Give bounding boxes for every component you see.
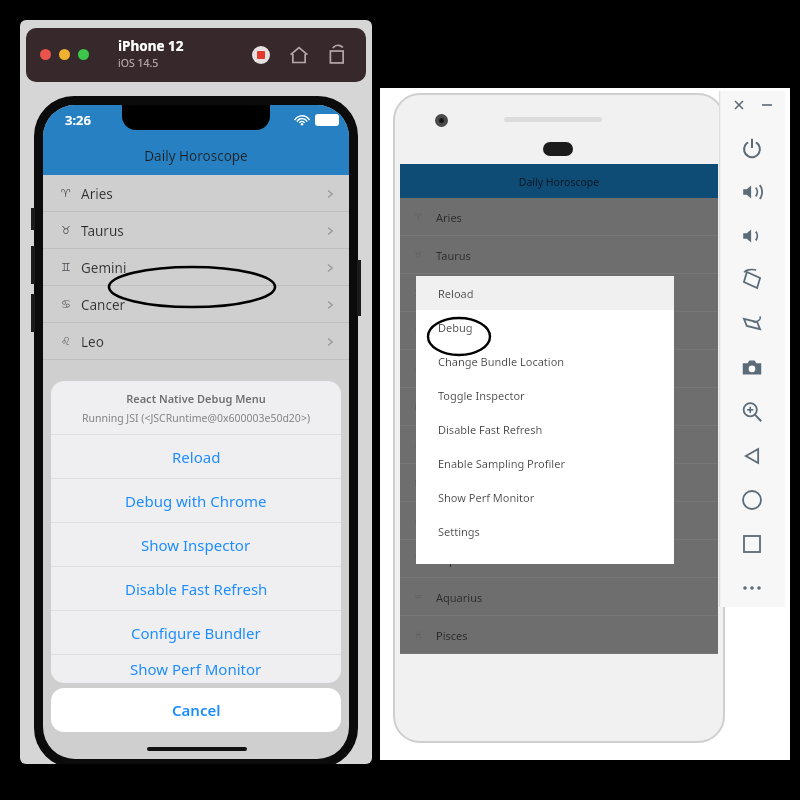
button[interactable]: ♍ xyxy=(400,388,718,426)
button[interactable]: Rotate right xyxy=(741,313,763,335)
button[interactable]: ♒ xyxy=(400,578,718,616)
button[interactable]: Disable Fast Refresh xyxy=(51,567,341,610)
button[interactable]: Reload xyxy=(416,276,674,310)
button[interactable]: Cancel xyxy=(51,688,341,732)
staticText: Leo xyxy=(436,362,455,377)
button[interactable]: More xyxy=(741,577,763,599)
button[interactable]: Rotate left xyxy=(741,269,763,291)
staticText: Reload xyxy=(438,286,474,301)
button[interactable]: ♏ xyxy=(400,464,718,502)
button[interactable]: Record xyxy=(252,46,270,64)
button[interactable]: Change Bundle Location xyxy=(416,344,674,378)
button[interactable]: ♉ xyxy=(400,236,718,274)
button[interactable]: ♋ xyxy=(400,312,718,350)
button[interactable]: Show Perf Monitor xyxy=(416,480,674,514)
staticText: Show Inspector xyxy=(141,535,251,555)
button[interactable]: Enable Sampling Profiler xyxy=(416,446,674,480)
button[interactable]: Rotate xyxy=(326,44,348,66)
button[interactable]: Home xyxy=(288,44,310,66)
staticText: ♓ xyxy=(414,630,423,640)
staticText: Capricorn xyxy=(436,552,487,567)
button[interactable]: ♌ xyxy=(43,323,349,360)
staticText: Daily Horoscope xyxy=(43,147,349,165)
staticText: ♐ xyxy=(414,516,423,526)
staticText: Reload xyxy=(172,447,221,467)
staticText: ♒ xyxy=(414,592,423,602)
button[interactable]: Zoom xyxy=(741,401,763,423)
staticText: ♊ xyxy=(414,288,423,298)
staticText: Disable Fast Refresh xyxy=(438,422,543,437)
button[interactable]: ♈ xyxy=(400,198,718,236)
button[interactable]: ♑ xyxy=(400,540,718,578)
button[interactable]: ♊ xyxy=(43,249,349,286)
button[interactable]: Toggle Inspector xyxy=(416,378,674,412)
button[interactable]: Minimize xyxy=(759,97,775,113)
button[interactable]: ♊ xyxy=(400,274,718,312)
button[interactable]: ♉ xyxy=(43,212,349,249)
button[interactable]: Disable Fast Refresh xyxy=(416,412,674,446)
button[interactable]: Show Inspector xyxy=(51,523,341,566)
button[interactable]: ♐ xyxy=(400,502,718,540)
staticText: ♋ xyxy=(414,326,423,336)
staticText: ♏ xyxy=(414,478,423,488)
staticText: Aries xyxy=(81,185,113,203)
button[interactable]: Debug xyxy=(416,310,674,344)
staticText: 3:26 xyxy=(65,111,91,129)
button[interactable]: Screenshot xyxy=(741,357,763,379)
staticText: Taurus xyxy=(81,222,124,240)
staticText: Enable Sampling Profiler xyxy=(438,456,565,471)
button[interactable]: Volume down xyxy=(741,225,763,247)
button[interactable]: Configure Bundler xyxy=(51,611,341,654)
button[interactable]: Settings xyxy=(416,514,674,548)
button[interactable]: ♓ xyxy=(400,616,718,654)
staticText: ♑ xyxy=(414,554,423,564)
staticText: Cancel xyxy=(172,700,221,720)
staticText: iPhone 12 xyxy=(118,37,184,55)
staticText: Taurus xyxy=(436,248,471,263)
staticText: Daily Horoscope xyxy=(400,175,718,189)
staticText: Running JSI (<JSCRuntime@0x600003e50d20>… xyxy=(51,411,341,425)
staticText: Debug with Chrome xyxy=(125,491,267,511)
staticText: Leo xyxy=(81,333,104,351)
staticText: Gemini xyxy=(81,259,127,277)
button[interactable]: Reload xyxy=(51,435,341,478)
staticText: Cancer xyxy=(436,324,472,339)
button[interactable]: ♎ xyxy=(400,426,718,464)
staticText: Aquarius xyxy=(436,590,483,605)
staticText: ♉ xyxy=(61,224,71,237)
staticText: iOS 14.5 xyxy=(118,56,159,70)
button[interactable]: Show Perf Monitor xyxy=(51,655,341,683)
staticText: Show Perf Monitor xyxy=(438,490,535,505)
staticText: Configure Bundler xyxy=(131,623,261,643)
staticText: ♍ xyxy=(414,402,423,412)
staticText: Gemini xyxy=(436,286,473,301)
staticText: ♌ xyxy=(414,364,423,374)
button[interactable]: Debug with Chrome xyxy=(51,479,341,522)
button[interactable]: Power xyxy=(741,137,763,159)
staticText: Debug xyxy=(438,320,473,335)
button[interactable]: Volume up xyxy=(741,181,763,203)
button[interactable]: Back xyxy=(741,445,763,467)
staticText: Sagittarius xyxy=(436,514,492,529)
staticText: Virgo xyxy=(436,400,464,415)
staticText: Change Bundle Location xyxy=(438,354,565,369)
button[interactable]: ♈ xyxy=(43,175,349,212)
staticText: Settings xyxy=(438,524,480,539)
staticText: React Native Debug Menu xyxy=(51,391,341,406)
staticText: Toggle Inspector xyxy=(438,388,525,403)
button[interactable]: Close xyxy=(731,97,747,113)
button[interactable]: Overview xyxy=(741,533,763,555)
staticText: ♈ xyxy=(61,187,71,200)
staticText: Pisces xyxy=(436,628,468,643)
staticText: ♌ xyxy=(61,335,71,348)
button[interactable]: Home xyxy=(741,489,763,511)
staticText: Cancer xyxy=(81,296,126,314)
staticText: Disable Fast Refresh xyxy=(125,579,268,599)
staticText: ♎ xyxy=(414,440,423,450)
button[interactable]: ♌ xyxy=(400,350,718,388)
button[interactable]: ♋ xyxy=(43,286,349,323)
staticText: Show Perf Monitor xyxy=(130,659,262,679)
